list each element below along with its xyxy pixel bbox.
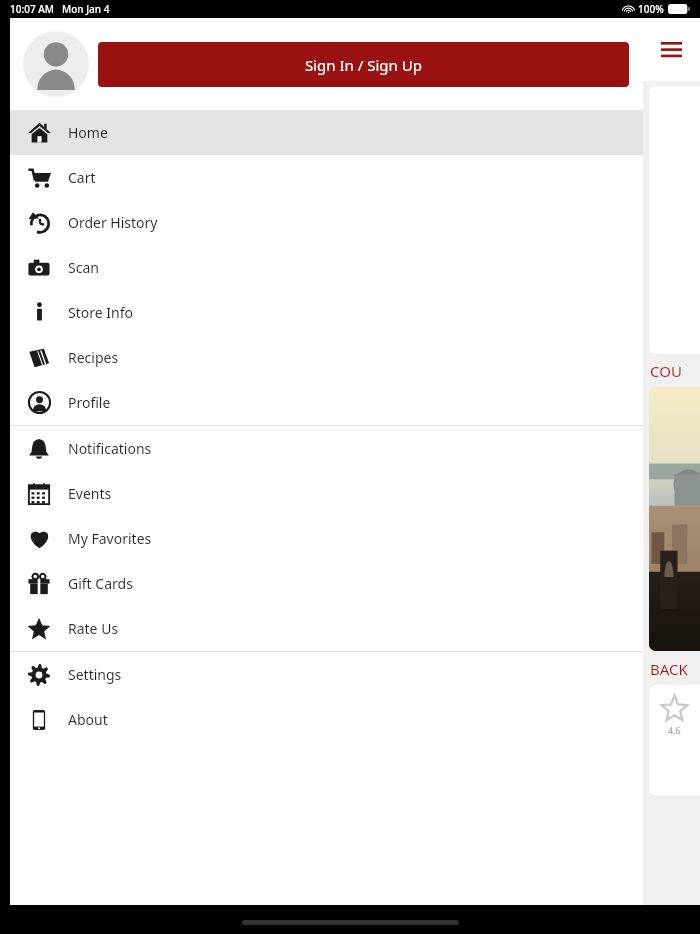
staticText: 4.6 <box>668 724 681 736</box>
button[interactable]: Scan <box>10 245 643 290</box>
staticText: Recipes <box>68 348 119 367</box>
button[interactable]: Rate Us <box>10 606 643 651</box>
staticText: Mon Jan 4 <box>62 2 110 16</box>
staticText: Scan <box>68 258 99 277</box>
staticText: Events <box>68 484 112 503</box>
button[interactable]: Notifications <box>10 426 643 471</box>
button[interactable]: About <box>10 697 643 742</box>
staticText: Gift Cards <box>68 574 133 593</box>
button[interactable] <box>649 387 700 651</box>
staticText: 10:07 AM <box>10 2 54 16</box>
staticText: Rate Us <box>68 619 119 638</box>
staticText: Settings <box>68 665 122 684</box>
staticText: BACK <box>650 659 688 679</box>
staticText: Cart <box>68 168 96 187</box>
button[interactable]: My Favorites <box>10 516 643 561</box>
button[interactable]: Events <box>10 471 643 516</box>
staticText: Profile <box>68 393 111 412</box>
staticText: COU <box>650 361 682 381</box>
staticText: Store Info <box>68 303 133 322</box>
button[interactable]: Open navigation menu <box>643 18 700 81</box>
button[interactable]: Cart <box>10 155 643 200</box>
staticText: Sign In / Sign Up <box>305 55 422 75</box>
button[interactable]: Order History <box>10 200 643 245</box>
staticText: About <box>68 710 108 729</box>
button[interactable]: Home <box>10 110 643 155</box>
staticText: 100% <box>638 2 664 16</box>
button[interactable]: Profile <box>10 380 643 425</box>
button[interactable]: Store Info <box>10 290 643 335</box>
button[interactable]: Gift Cards <box>10 561 643 606</box>
button[interactable]: Sign In / Sign Up <box>98 42 629 87</box>
staticText: My Favorites <box>68 529 152 548</box>
button[interactable]: Profile picture <box>23 31 89 97</box>
staticText: Order History <box>68 213 158 232</box>
button[interactable]: Settings <box>10 652 643 697</box>
staticText: Notifications <box>68 439 152 458</box>
button[interactable]: 4.6 <box>649 685 700 795</box>
staticText: Home <box>68 123 108 142</box>
button[interactable]: Recipes <box>10 335 643 380</box>
